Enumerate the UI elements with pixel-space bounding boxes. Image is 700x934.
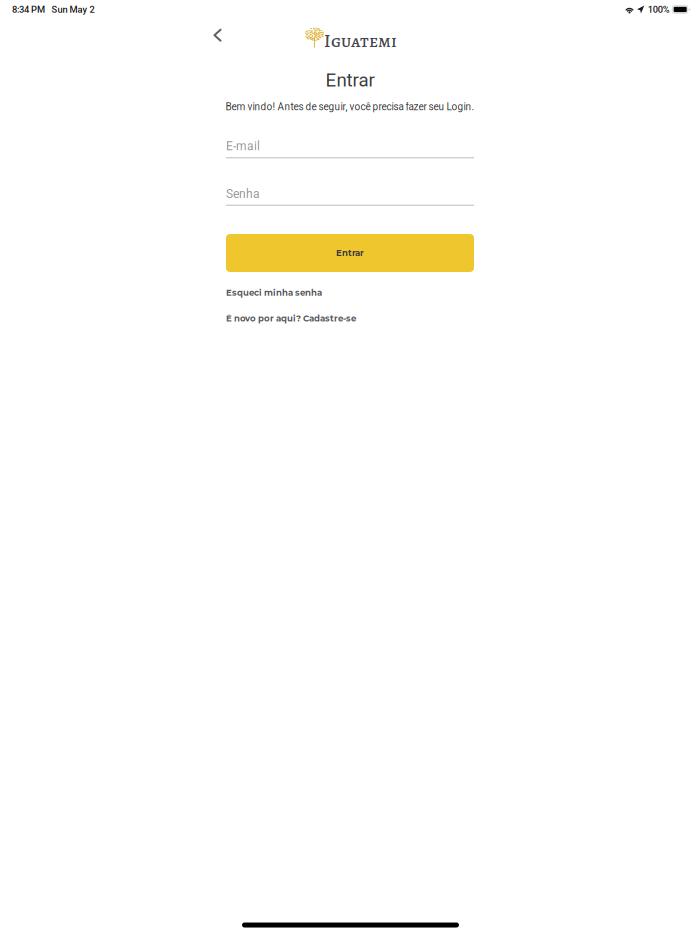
staticText: Bem vindo! Antes de seguir, você precisa… [225,101,474,113]
staticText: Senha [226,187,260,201]
staticText: É novo por aqui? Cadastre-se [226,313,356,324]
button[interactable]: Entrar [226,234,474,272]
button[interactable]: É novo por aqui? Cadastre-se [226,309,474,327]
staticText: Esqueci minha senha [226,287,322,298]
staticText: E-mail [226,139,260,153]
button[interactable]: Esqueci minha senha [226,284,474,302]
staticText: Sun May 2 [51,4,94,15]
staticText: 8:34 PM [12,4,45,15]
staticText: Entrar [336,248,364,258]
staticText: Iguatemi [324,29,397,53]
staticText: 100% [648,4,670,15]
staticText: Entrar [325,69,374,91]
button[interactable]: Senha [0,0,700,934]
button[interactable]: Back [204,22,230,48]
button[interactable]: E-mail [0,0,700,934]
